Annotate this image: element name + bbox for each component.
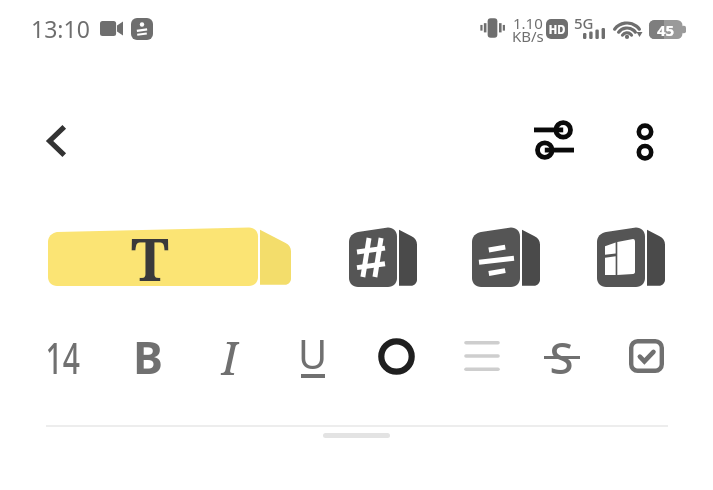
staticText: T [131, 219, 169, 284]
button[interactable]: Back [29, 116, 83, 166]
button[interactable]: Text colour [366, 328, 426, 384]
button[interactable]: Italic [200, 328, 260, 384]
staticText: S [549, 327, 574, 385]
staticText: 1.10 [513, 13, 543, 33]
button[interactable]: Align [450, 328, 510, 384]
button[interactable]: T [48, 227, 292, 292]
staticText: I [221, 325, 239, 387]
staticText: 45 [657, 20, 675, 39]
staticText: 5G [574, 13, 594, 33]
button[interactable]: Bold [118, 328, 178, 384]
button[interactable] [597, 227, 666, 293]
staticText: U [298, 326, 328, 380]
button[interactable]: Checklist [616, 328, 676, 384]
staticText: KB/s [512, 26, 544, 46]
staticText: HD [549, 21, 565, 37]
button[interactable] [349, 227, 418, 293]
button[interactable] [472, 227, 541, 293]
button[interactable]: Underline [283, 328, 343, 384]
staticText: B [133, 326, 163, 386]
staticText: 13:10 [31, 13, 90, 44]
button[interactable]: Strikethrough [532, 328, 592, 384]
button[interactable]: More options [621, 118, 669, 166]
button[interactable]: Font size [33, 328, 93, 384]
button[interactable]: Settings [521, 114, 587, 166]
staticText: 14 [45, 328, 80, 384]
